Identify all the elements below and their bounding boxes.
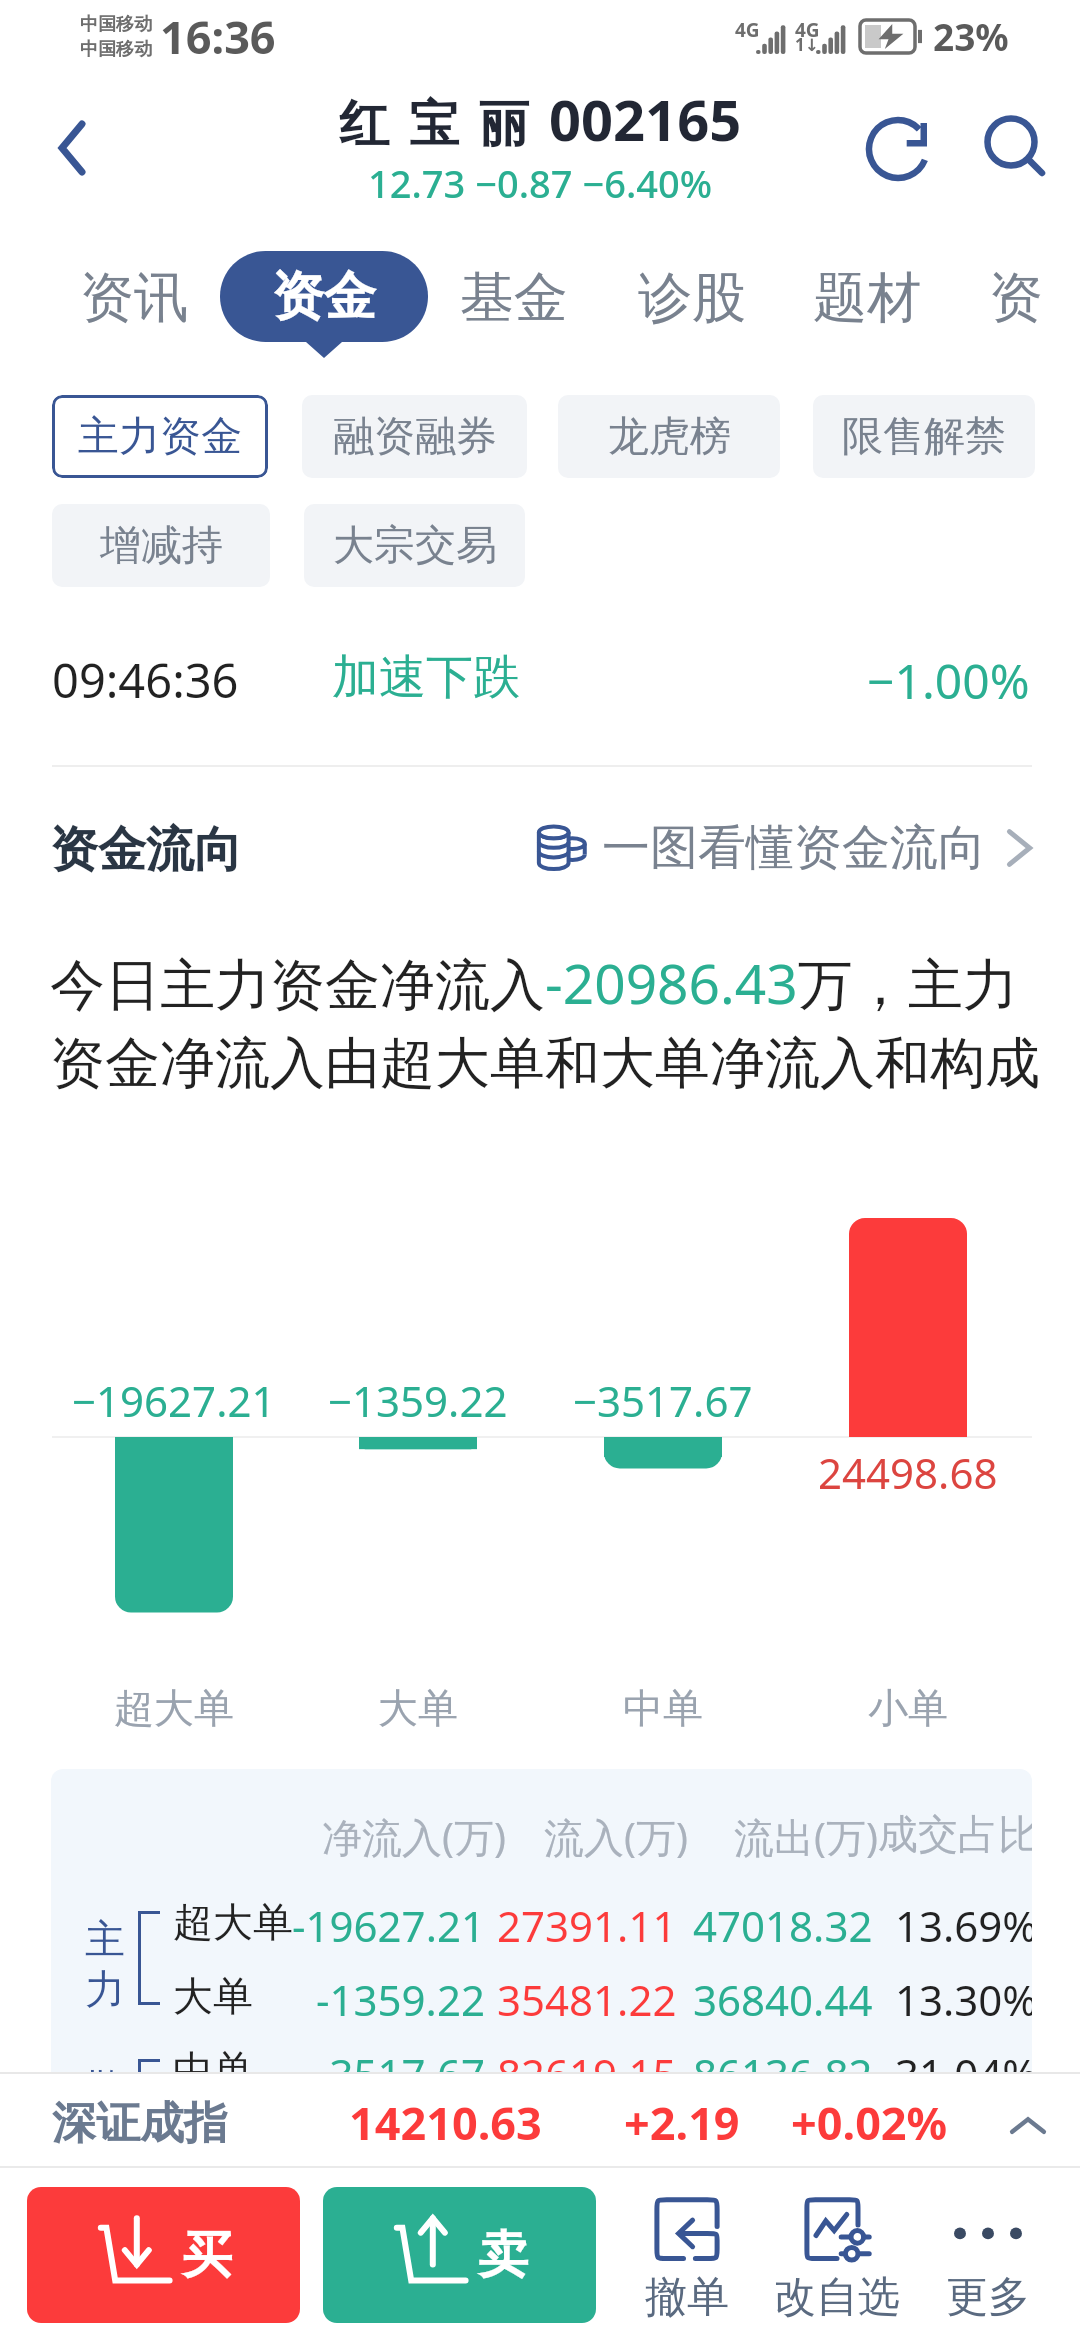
staticText: 35481.22 [497, 1971, 677, 2028]
staticText: 09:46:36 [52, 648, 239, 712]
staticText: 27391.11 [497, 1897, 677, 1954]
staticText: 超大单 [173, 1897, 293, 1947]
staticText: 16:36 [160, 6, 276, 67]
button[interactable]: 卖 [323, 2187, 596, 2323]
button[interactable]: 大宗交易 [304, 504, 525, 587]
staticText: -19627.21 [292, 1897, 485, 1954]
staticText: 基金 [460, 264, 568, 332]
staticText: 净流入(万) [322, 1809, 506, 1864]
staticText: 卖 [478, 2224, 528, 2287]
button[interactable]: 撤单 [609, 2197, 764, 2324]
staticText: 一图看懂资金流向 [602, 818, 986, 878]
staticText: 买 [182, 2224, 232, 2287]
staticText: 中国移动 [80, 13, 152, 36]
staticText: 成交占比 [878, 1809, 1032, 1859]
staticText: 中国移动 [80, 38, 152, 61]
staticText: 流出(万) [734, 1809, 878, 1864]
button[interactable]: 资 [989, 264, 1043, 332]
staticText: -3517.67 [316, 2045, 485, 2072]
staticText: 大单 [173, 1971, 253, 2021]
staticText: 限售解禁 [842, 411, 1006, 463]
staticText: 主力资金 [78, 411, 242, 463]
staticText: 13.69% [895, 1897, 1032, 1954]
staticText: −3517.67 [573, 1372, 753, 1429]
staticText: 12.73 −0.87 −6.40% [368, 157, 713, 209]
staticText: 14210.63 [349, 2092, 542, 2153]
staticText: 小单 [868, 1683, 948, 1733]
button[interactable]: 诊股 [638, 264, 746, 332]
staticText: 47018.32 [693, 1897, 873, 1954]
staticText: 大宗交易 [333, 520, 497, 572]
staticText: 资金流向 [50, 820, 242, 880]
button[interactable]: 买 [27, 2187, 300, 2323]
button[interactable]: 融资融券 [302, 395, 527, 478]
staticText: -1359.22 [316, 1971, 485, 2028]
staticText: 撤单 [645, 2271, 729, 2324]
staticText: 中单 [173, 2045, 253, 2072]
button[interactable]: 资金 [220, 251, 428, 342]
staticText: 加速下跌 [332, 648, 520, 707]
button[interactable]: 增减持 [52, 504, 270, 587]
button[interactable]: 基金 [460, 264, 568, 332]
button[interactable]: 限售解禁 [813, 395, 1035, 478]
staticText: 36840.44 [693, 1971, 873, 2028]
button[interactable]: Refresh [844, 72, 962, 232]
staticText: 增减持 [100, 520, 223, 572]
staticText: 散 [85, 2062, 125, 2072]
staticText: 更多 [946, 2271, 1030, 2324]
staticText: 今日主力资金净流入-20986.43万，主力资金净流入由超大单和大单净流入和构成 [50, 945, 1040, 1099]
staticText: 24498.68 [818, 1444, 998, 1501]
button[interactable]: Collapse [998, 2097, 1058, 2157]
staticText: −1.00% [867, 648, 1030, 713]
staticText: 13.30% [895, 1971, 1032, 2028]
staticText: 4G [735, 17, 760, 43]
button[interactable]: 更多 [910, 2197, 1065, 2324]
staticText: 23% [933, 11, 1009, 61]
button[interactable]: 主力资金 [52, 395, 268, 478]
staticText: 诊股 [638, 264, 746, 332]
staticText: 资讯 [80, 264, 188, 332]
staticText: 超大单 [114, 1683, 234, 1733]
button[interactable]: 龙虎榜 [558, 395, 780, 478]
staticText: 深证成指 [52, 2096, 228, 2151]
staticText: −1359.22 [328, 1372, 508, 1429]
staticText: +0.02% [791, 2092, 948, 2153]
staticText: 红宝丽002165 [339, 81, 742, 157]
staticText: 中单 [623, 1683, 703, 1733]
staticText: 4G [795, 17, 820, 43]
staticText: 资 [989, 264, 1043, 332]
button[interactable]: Search [962, 72, 1080, 232]
staticText: 1↓ [795, 33, 819, 56]
staticText: +2.19 [624, 2092, 740, 2153]
staticText: 31.04% [895, 2045, 1032, 2072]
staticText: 题材 [813, 264, 921, 332]
staticText: 86136.82 [693, 2045, 873, 2072]
staticText: −19627.21 [72, 1372, 276, 1429]
staticText: 大单 [378, 1683, 458, 1733]
button[interactable]: 一图看懂资金流向 [534, 818, 1044, 878]
staticText: 改自选 [774, 2271, 900, 2324]
staticText: 流入(万) [544, 1809, 688, 1864]
staticText: 主 [85, 1914, 125, 1964]
staticText: 资金 [272, 264, 376, 330]
button[interactable]: 改自选 [759, 2197, 914, 2324]
staticText: 力 [85, 1964, 125, 2014]
staticText: 融资融券 [333, 411, 497, 463]
staticText: 82619.15 [497, 2045, 677, 2072]
button[interactable]: 题材 [813, 264, 921, 332]
staticText: 龙虎榜 [608, 411, 731, 463]
button[interactable]: 资讯 [80, 264, 188, 332]
button[interactable]: Back [0, 72, 130, 232]
